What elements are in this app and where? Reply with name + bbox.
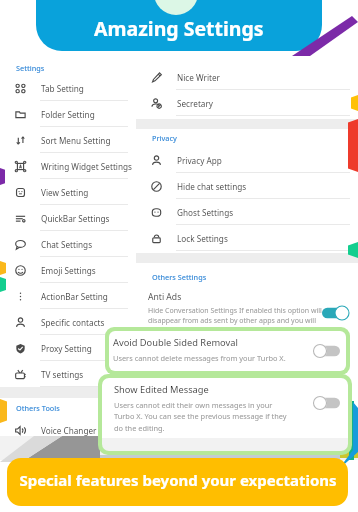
button[interactable]: Proxy Setting	[0, 335, 136, 361]
staticText: Proxy Setting	[41, 343, 92, 354]
button[interactable]: Chat Settings	[0, 231, 136, 257]
staticText: QuickBar Settings	[41, 213, 110, 224]
button[interactable]: Anti Ads	[148, 291, 326, 336]
staticText: Writing Widget Settings	[41, 161, 132, 172]
button[interactable]: Secretary	[136, 90, 358, 116]
button[interactable]: TV settings	[0, 361, 136, 387]
staticText: Show Edited Message	[114, 383, 209, 396]
button[interactable]: Tab Setting	[0, 75, 136, 101]
button[interactable]: ActionBar Setting	[0, 283, 136, 309]
staticText: Secretary	[177, 98, 213, 109]
staticText: Amazing Settings	[94, 15, 264, 42]
button[interactable]: Show Edited Message	[102, 378, 348, 451]
staticText: View Setting	[41, 187, 89, 198]
button[interactable]: Lock Settings	[136, 225, 358, 251]
staticText: Folder Setting	[41, 109, 95, 120]
staticText: Tab Setting	[41, 83, 84, 94]
staticText: Avoid Double Sided Removal	[113, 336, 238, 349]
button[interactable]: Special features beyond your expectation…	[7, 456, 348, 504]
staticText: Nice Writer	[177, 72, 220, 83]
staticText: Users cannot delete messages from your T…	[113, 353, 286, 363]
button[interactable]: Privacy App	[136, 147, 358, 173]
button[interactable]: Folder Setting	[0, 101, 136, 127]
staticText: Settings	[16, 63, 45, 73]
staticText: Anti Ads	[148, 291, 182, 303]
button[interactable]: QuickBar Settings	[0, 205, 136, 231]
button[interactable]: Toggle off	[313, 396, 340, 410]
button[interactable]: Toggle off	[313, 344, 340, 358]
button[interactable]: Specific contacts settings	[0, 309, 136, 335]
button[interactable]: Amazing Settings	[0, 6, 358, 50]
staticText: TV settings	[41, 369, 84, 380]
staticText: Chat Settings	[41, 239, 93, 250]
button[interactable]: Writing Widget Settings	[0, 153, 136, 179]
button[interactable]: Nice Writer	[136, 64, 358, 90]
button[interactable]: Toggle on	[322, 306, 349, 320]
staticText: Hide Conversation Settings If enabled th…	[148, 306, 326, 336]
staticText: Specific contacts settings	[41, 317, 136, 328]
staticText: Emoji Settings	[41, 265, 96, 276]
staticText: Others Settings	[152, 272, 207, 282]
button[interactable]: Emoji Settings	[0, 257, 136, 283]
button[interactable]: Voice Changer	[0, 417, 136, 443]
button[interactable]: View Setting	[0, 179, 136, 205]
staticText: Voice Changer	[41, 425, 97, 436]
staticText: Privacy App	[177, 155, 222, 166]
button[interactable]: Ghost Settings	[136, 199, 358, 225]
staticText: Others Tools	[16, 403, 60, 413]
staticText: Special features beyond your expectation…	[19, 470, 337, 490]
staticText: Ghost Settings	[177, 207, 234, 218]
button[interactable]: Avoid Double Sided Removal	[109, 331, 346, 371]
staticText: Lock Settings	[177, 233, 228, 244]
staticText: Privacy	[152, 133, 177, 143]
staticText: Sort Menu Setting	[41, 135, 111, 146]
staticText: Users cannot edit their own messages in …	[114, 400, 292, 433]
staticText: Hide chat settings	[177, 181, 247, 192]
button[interactable]: Sort Menu Setting	[0, 127, 136, 153]
button[interactable]: Hide chat settings	[136, 173, 358, 199]
staticText: ActionBar Setting	[41, 291, 108, 302]
